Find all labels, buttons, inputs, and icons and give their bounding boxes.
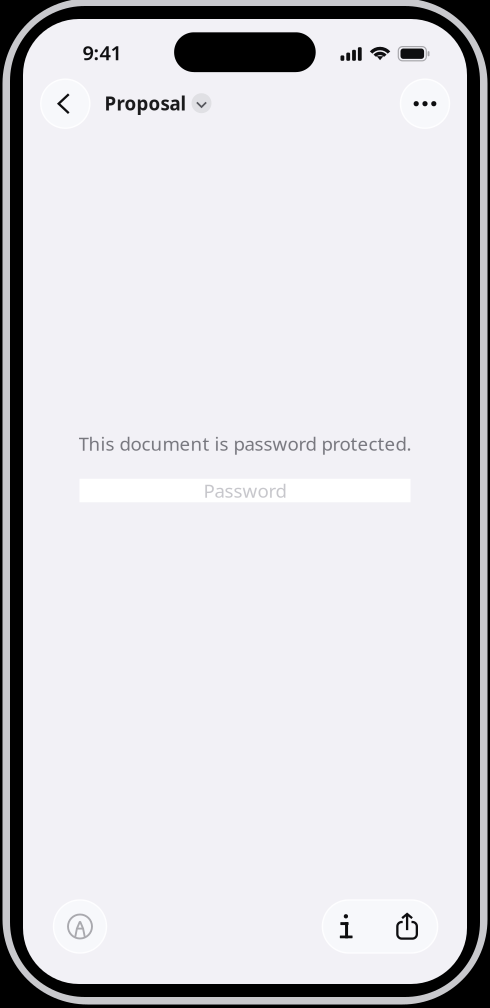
button[interactable]: Markup	[53, 900, 106, 953]
staticText: Password	[203, 478, 286, 503]
button[interactable]: More options	[400, 79, 449, 128]
staticText: Proposal	[104, 91, 186, 116]
button[interactable]: Info	[322, 900, 380, 953]
button[interactable]: Proposal	[104, 79, 211, 128]
button[interactable]: Back	[41, 79, 90, 128]
staticText: 9:41	[83, 39, 122, 66]
staticText: This document is password protected.	[78, 431, 411, 456]
button[interactable]: Share	[380, 900, 438, 953]
